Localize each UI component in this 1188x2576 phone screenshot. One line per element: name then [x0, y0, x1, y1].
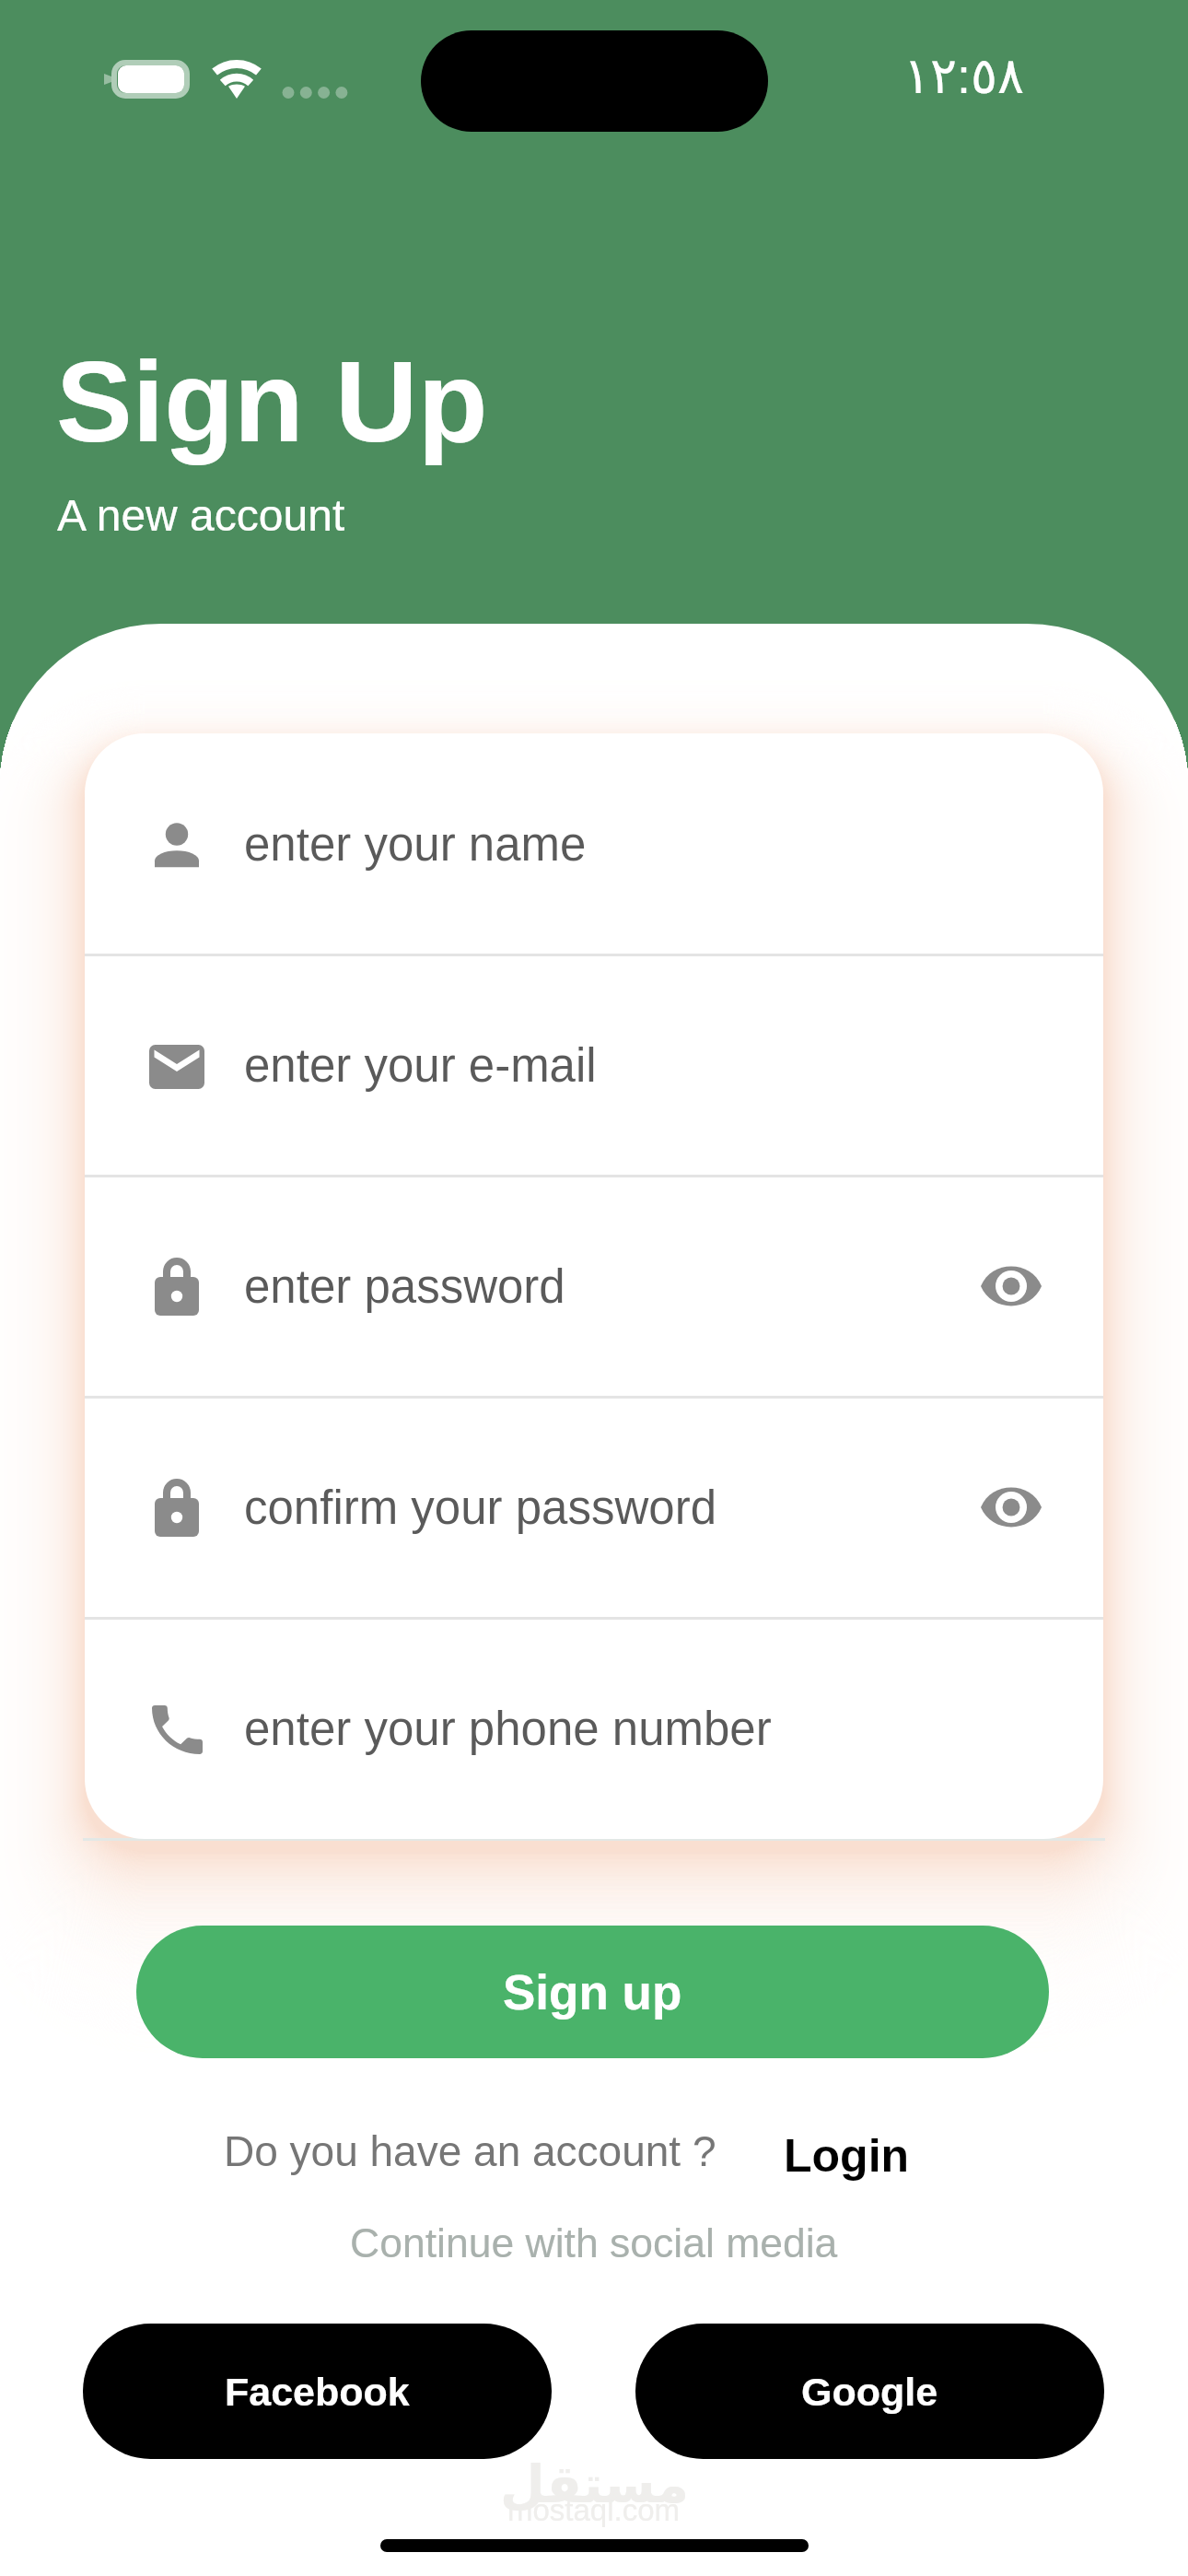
staticText: enter your phone number [244, 1703, 772, 1755]
staticText: enter your name [244, 818, 587, 871]
staticText: Google [801, 2370, 938, 2414]
staticText: enter password [244, 1260, 565, 1313]
button[interactable]: enter password [85, 1176, 1103, 1397]
staticText: Sign Up [56, 338, 488, 466]
button[interactable]: confirm your password [85, 1397, 1103, 1618]
button[interactable]: Show password [958, 1454, 1065, 1561]
staticText: Continue with social media [350, 2220, 838, 2266]
staticText: Login [784, 2130, 910, 2182]
button[interactable]: enter your name [85, 733, 1103, 954]
button[interactable]: Show password [958, 1233, 1065, 1340]
staticText: ١٢:٥٨ [903, 47, 1025, 105]
button[interactable]: enter your e-mail [85, 954, 1103, 1176]
button[interactable]: Facebook [83, 2324, 552, 2459]
staticText: enter your e-mail [244, 1039, 597, 1092]
staticText: A new account [57, 491, 345, 541]
button[interactable]: Sign up [136, 1926, 1049, 2058]
staticText: Do you have an account ? [224, 2127, 716, 2174]
staticText: Sign up [503, 1965, 682, 2020]
button[interactable]: Google [635, 2324, 1104, 2459]
staticText: confirm your password [244, 1481, 717, 1534]
button[interactable]: enter your phone number [85, 1618, 1103, 1839]
staticText: Facebook [225, 2370, 410, 2414]
button[interactable]: Login [771, 2123, 923, 2189]
staticText: mostaql.com [507, 2493, 681, 2527]
staticText: مستقل [500, 2454, 689, 2514]
